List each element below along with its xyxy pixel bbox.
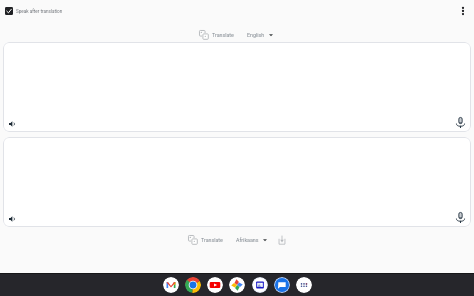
- button[interactable]: Listen: [3, 137, 471, 227]
- staticText: Afrikaans: [236, 237, 259, 243]
- staticText: Translate: [201, 237, 223, 243]
- button[interactable]: Speak: [453, 115, 467, 129]
- button[interactable]: Gmail: [163, 277, 179, 293]
- button[interactable]: Google Photos: [229, 277, 245, 293]
- button[interactable]: More options: [456, 4, 470, 18]
- button[interactable]: YouTube: [207, 277, 223, 293]
- button[interactable]: Download language: [275, 233, 288, 246]
- staticText: Speak after translation: [16, 9, 63, 14]
- button[interactable]: Translate: [197, 27, 236, 42]
- button[interactable]: Translate: [186, 232, 225, 247]
- button[interactable]: Messages: [274, 277, 290, 293]
- button[interactable]: Speak after translation: [4, 6, 64, 16]
- staticText: English: [247, 32, 265, 38]
- button[interactable]: Listen: [5, 212, 18, 225]
- button[interactable]: English: [245, 29, 275, 41]
- staticText: Translate: [212, 32, 234, 38]
- button[interactable]: Speak: [453, 210, 467, 224]
- button[interactable]: Chrome: [185, 277, 201, 293]
- button[interactable]: Listen: [3, 42, 471, 132]
- button[interactable]: Afrikaans: [234, 234, 269, 246]
- button[interactable]: All apps: [296, 277, 312, 293]
- button[interactable]: Listen: [5, 117, 18, 130]
- button[interactable]: Google Drive: [252, 277, 268, 293]
